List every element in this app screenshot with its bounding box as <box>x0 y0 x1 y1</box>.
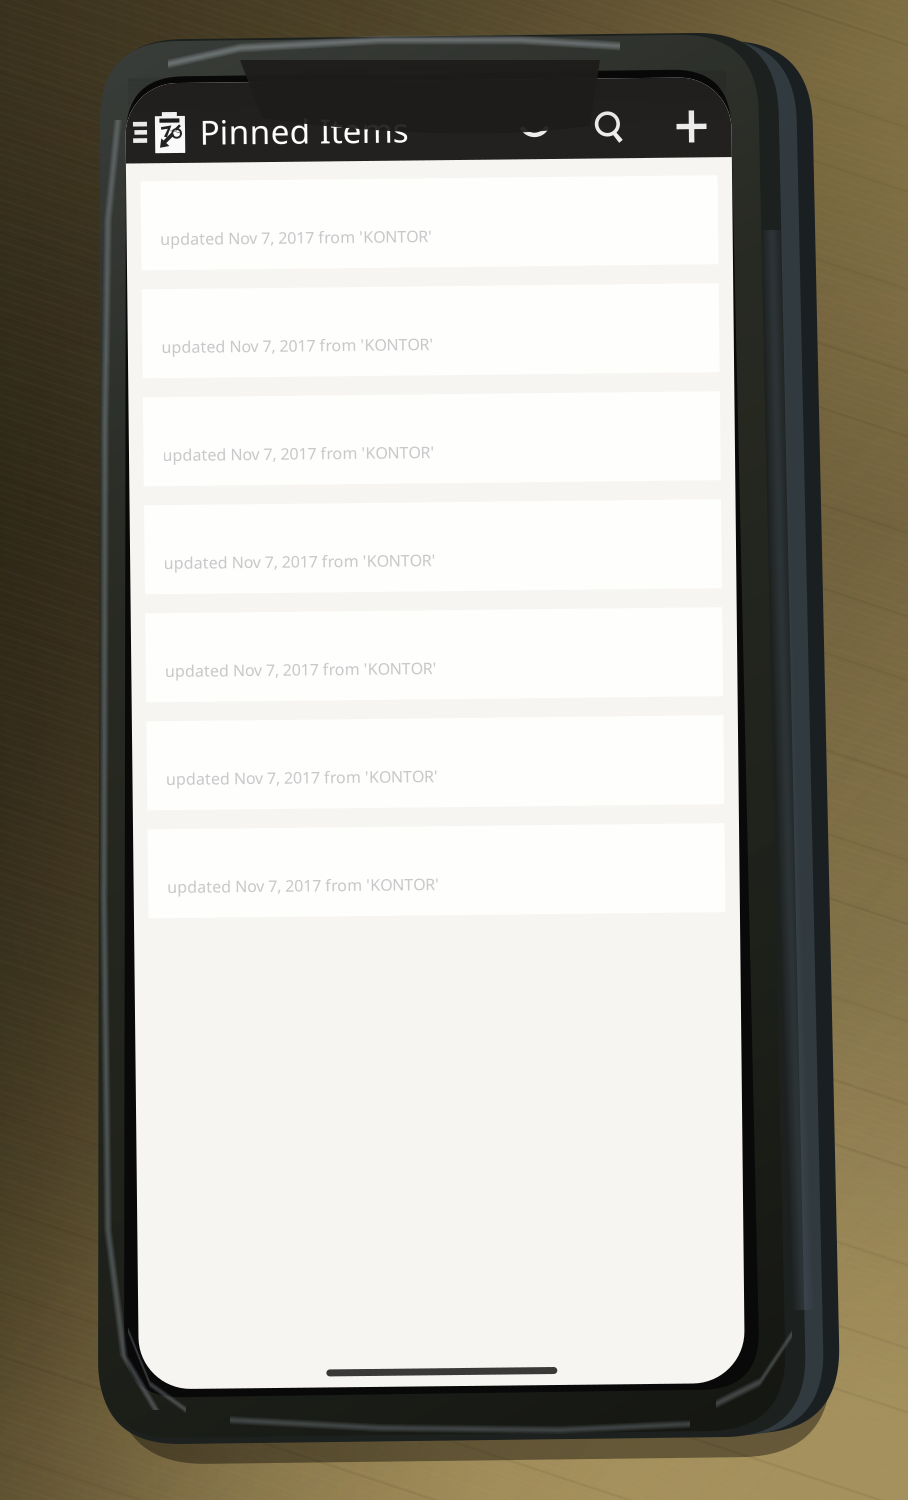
button[interactable]: Add <box>658 107 738 151</box>
button[interactable]: Search <box>572 107 658 151</box>
staticText: updated Nov 7, 2017 from 'KONTOR' <box>165 765 437 786</box>
staticText: updated Nov 7, 2017 from 'KONTOR' <box>165 441 437 462</box>
staticText: updated Nov 7, 2017 from 'KONTOR' <box>165 225 437 246</box>
button[interactable]: Pinned items <box>157 107 196 151</box>
button[interactable]: updated Nov 7, 2017 from 'KONTOR' <box>146 718 723 807</box>
staticText: updated Nov 7, 2017 from 'KONTOR' <box>165 333 437 354</box>
staticText: updated Nov 7, 2017 from 'KONTOR' <box>165 549 437 570</box>
button[interactable]: updated Nov 7, 2017 from 'KONTOR' <box>146 502 723 591</box>
button[interactable]: updated Nov 7, 2017 from 'KONTOR' <box>146 286 723 375</box>
staticText: updated Nov 7, 2017 from 'KONTOR' <box>165 873 437 894</box>
button[interactable]: Menu <box>136 107 157 151</box>
button[interactable]: Refresh <box>510 107 572 151</box>
button[interactable]: updated Nov 7, 2017 from 'KONTOR' <box>146 610 723 699</box>
button[interactable]: updated Nov 7, 2017 from 'KONTOR' <box>146 826 723 915</box>
staticText: Pinned Items <box>206 107 415 151</box>
button[interactable]: updated Nov 7, 2017 from 'KONTOR' <box>146 394 723 483</box>
staticText: updated Nov 7, 2017 from 'KONTOR' <box>165 657 437 678</box>
button[interactable]: updated Nov 7, 2017 from 'KONTOR' <box>146 178 723 267</box>
